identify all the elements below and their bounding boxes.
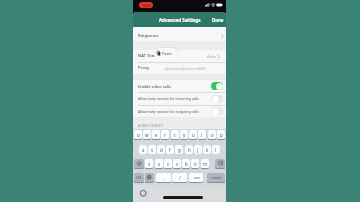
- staticText: n: [194, 161, 197, 167]
- staticText: f: [169, 147, 171, 153]
- staticText: d: [160, 147, 163, 153]
- staticText: AUDIO CODECS: [138, 124, 164, 128]
- button[interactable]: [211, 82, 223, 90]
- staticText: o: [211, 132, 214, 138]
- button[interactable]: [211, 107, 223, 115]
- button[interactable]: w: [143, 130, 151, 139]
- staticText: q: [137, 132, 140, 138]
- staticText: Allow early session for incoming calls: [138, 96, 199, 101]
- staticText: w: [145, 132, 149, 138]
- button[interactable]: return: [207, 173, 225, 182]
- staticText: ,: [163, 175, 165, 181]
- staticText: z: [148, 161, 151, 167]
- button[interactable]: b: [182, 159, 190, 168]
- staticText: p: [220, 132, 223, 138]
- button[interactable]: ,: [156, 173, 171, 182]
- button[interactable]: k: [203, 145, 211, 154]
- button[interactable]: h: [185, 145, 193, 154]
- button[interactable]: t: [171, 130, 179, 139]
- button[interactable]: Proxy: [138, 62, 168, 74]
- staticText: j: [197, 147, 199, 153]
- button[interactable]: [211, 95, 223, 103]
- staticText: .com: [193, 176, 200, 180]
- staticText: Allow early session for outgoing calls: [138, 109, 199, 114]
- staticText: 123: [136, 176, 142, 180]
- button[interactable]: x: [155, 159, 163, 168]
- button[interactable]: u: [189, 130, 197, 139]
- staticText: v: [176, 161, 179, 167]
- button[interactable]: z: [145, 159, 153, 168]
- staticText: e: [155, 132, 158, 138]
- staticText: Enable video calls: [138, 84, 171, 89]
- staticText: sip.example.com:5060: [164, 66, 206, 71]
- button[interactable]: m: [201, 159, 209, 168]
- staticText: h: [188, 147, 191, 153]
- button[interactable]: Paste: [154, 48, 178, 59]
- staticText: b: [185, 161, 188, 167]
- staticText: Ringtones: [138, 33, 159, 39]
- staticText: r: [164, 132, 166, 138]
- button[interactable]: c: [164, 159, 172, 168]
- button[interactable]: n: [191, 159, 199, 168]
- staticText: Proxy: [138, 65, 150, 71]
- button[interactable]: q: [134, 130, 142, 139]
- button[interactable]: e: [152, 130, 160, 139]
- staticText: t: [174, 132, 176, 138]
- button[interactable]: .com: [189, 173, 203, 182]
- button[interactable]: Allow early session for outgoing calls: [138, 105, 210, 117]
- button[interactable]: Done: [209, 12, 226, 27]
- button[interactable]: g: [175, 145, 183, 154]
- staticText: /: [179, 175, 181, 181]
- button[interactable]: f: [166, 145, 174, 154]
- button[interactable]: l: [212, 145, 220, 154]
- staticText: u: [192, 132, 195, 138]
- staticText: Auto: [207, 54, 216, 59]
- button[interactable]: [134, 159, 144, 168]
- staticText: Done: [212, 17, 224, 23]
- button[interactable]: i: [198, 130, 206, 139]
- button[interactable]: s: [148, 145, 156, 154]
- staticText: NAT Trav: [138, 53, 156, 59]
- staticText: c: [167, 161, 170, 167]
- button[interactable]: Allow early session for incoming calls: [138, 92, 210, 104]
- button[interactable]: [215, 159, 225, 168]
- staticText: Paste: [162, 51, 172, 56]
- staticText: g: [178, 147, 181, 153]
- staticText: 14:41: [142, 3, 151, 8]
- staticText: x: [158, 161, 161, 167]
- staticText: s: [151, 147, 154, 153]
- button[interactable]: 14:41: [139, 2, 153, 8]
- staticText: l: [215, 147, 217, 153]
- button[interactable]: d: [157, 145, 165, 154]
- button[interactable]: j: [194, 145, 202, 154]
- button[interactable]: NAT Trav: [138, 50, 178, 62]
- button[interactable]: v: [173, 159, 181, 168]
- button[interactable]: 123: [134, 173, 144, 182]
- button[interactable]: a: [139, 145, 147, 154]
- button[interactable]: r: [161, 130, 169, 139]
- staticText: Advanced Settings: [159, 17, 201, 23]
- staticText: a: [142, 147, 145, 153]
- staticText: return: [212, 176, 221, 180]
- staticText: k: [206, 147, 209, 153]
- staticText: i: [201, 132, 203, 138]
- staticText: y: [183, 132, 186, 138]
- button[interactable]: Enable video calls: [138, 80, 208, 92]
- button[interactable]: o: [208, 130, 216, 139]
- button[interactable]: p: [217, 130, 225, 139]
- button[interactable]: [133, 27, 226, 41]
- button[interactable]: [145, 173, 154, 182]
- staticText: m: [203, 161, 208, 167]
- button[interactable]: /: [172, 173, 187, 182]
- button[interactable]: y: [180, 130, 188, 139]
